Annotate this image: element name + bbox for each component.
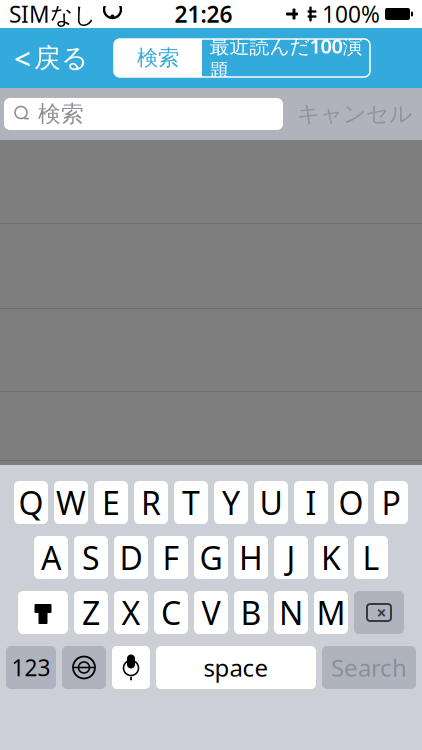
staticText: C bbox=[161, 591, 181, 634]
staticText: 21:26 bbox=[174, 0, 232, 29]
staticText: X bbox=[121, 591, 140, 634]
button[interactable]: F bbox=[154, 536, 188, 579]
staticText: A bbox=[41, 536, 61, 579]
staticText: 最近読んだ100演題 bbox=[209, 32, 362, 83]
staticText: < bbox=[14, 38, 31, 77]
button[interactable]: キャンセル bbox=[291, 94, 418, 134]
staticText: B bbox=[240, 591, 261, 634]
button[interactable]: C bbox=[154, 591, 188, 634]
staticText: E bbox=[102, 481, 120, 524]
button[interactable]: K bbox=[314, 536, 348, 579]
staticText: Z bbox=[82, 591, 100, 634]
button[interactable]: R bbox=[134, 481, 168, 524]
button[interactable]: 検索 bbox=[114, 39, 202, 77]
button[interactable]: Shift bbox=[18, 591, 68, 634]
staticText: Search bbox=[331, 652, 407, 683]
staticText: Q bbox=[18, 481, 43, 524]
button[interactable]: space bbox=[156, 646, 316, 689]
button[interactable]: I bbox=[294, 481, 328, 524]
button[interactable]: U bbox=[254, 481, 288, 524]
staticText: SIMなし bbox=[9, 0, 96, 29]
staticText: F bbox=[162, 536, 179, 579]
staticText: H bbox=[239, 536, 263, 579]
staticText: キャンセル bbox=[297, 100, 412, 128]
button[interactable]: J bbox=[274, 536, 308, 579]
staticText: R bbox=[141, 481, 161, 524]
button[interactable]: Delete bbox=[354, 591, 404, 634]
staticText: W bbox=[56, 481, 86, 524]
button[interactable]: E bbox=[94, 481, 128, 524]
staticText: P bbox=[381, 481, 400, 524]
staticText: G bbox=[199, 536, 222, 579]
button[interactable]: O bbox=[334, 481, 368, 524]
staticText: 検索 bbox=[38, 100, 84, 128]
button[interactable]: B bbox=[234, 591, 268, 634]
staticText: O bbox=[338, 481, 363, 524]
staticText: I bbox=[305, 481, 316, 524]
button[interactable]: Y bbox=[214, 481, 248, 524]
staticText: U bbox=[259, 481, 282, 524]
staticText: D bbox=[119, 536, 142, 579]
button[interactable]: H bbox=[234, 536, 268, 579]
staticText: K bbox=[321, 536, 341, 579]
staticText: 100% bbox=[322, 0, 380, 29]
button[interactable]: 検索 bbox=[4, 98, 283, 130]
button[interactable]: G bbox=[194, 536, 228, 579]
button[interactable]: Dictation bbox=[112, 646, 150, 689]
button[interactable]: S bbox=[74, 536, 108, 579]
button[interactable]: L bbox=[354, 536, 388, 579]
staticText: T bbox=[182, 481, 200, 524]
staticText: 123 bbox=[11, 652, 50, 682]
button[interactable]: T bbox=[174, 481, 208, 524]
button[interactable]: M bbox=[314, 591, 348, 634]
button[interactable]: N bbox=[274, 591, 308, 634]
button[interactable]: W bbox=[54, 481, 88, 524]
button[interactable]: 123 bbox=[6, 646, 56, 689]
button[interactable]: 最近読んだ100演題 bbox=[202, 39, 370, 77]
button[interactable]: V bbox=[194, 591, 228, 634]
staticText: Y bbox=[222, 481, 240, 524]
staticText: space bbox=[203, 652, 268, 683]
staticText: S bbox=[82, 536, 100, 579]
button[interactable]: Search bbox=[322, 646, 416, 689]
button[interactable]: < bbox=[0, 30, 102, 86]
button[interactable]: Z bbox=[74, 591, 108, 634]
staticText: × bbox=[376, 601, 386, 624]
button[interactable]: P bbox=[374, 481, 408, 524]
button[interactable]: X bbox=[114, 591, 148, 634]
staticText: V bbox=[201, 591, 220, 634]
button[interactable]: A bbox=[34, 536, 68, 579]
staticText: J bbox=[286, 536, 295, 579]
staticText: 検索 bbox=[137, 45, 179, 71]
button[interactable]: Q bbox=[14, 481, 48, 524]
button[interactable]: D bbox=[114, 536, 148, 579]
staticText: L bbox=[362, 536, 379, 579]
button[interactable]: Next keyboard bbox=[62, 646, 106, 689]
staticText: M bbox=[316, 591, 345, 634]
staticText: N bbox=[279, 591, 303, 634]
staticText: 戻る bbox=[34, 42, 88, 74]
